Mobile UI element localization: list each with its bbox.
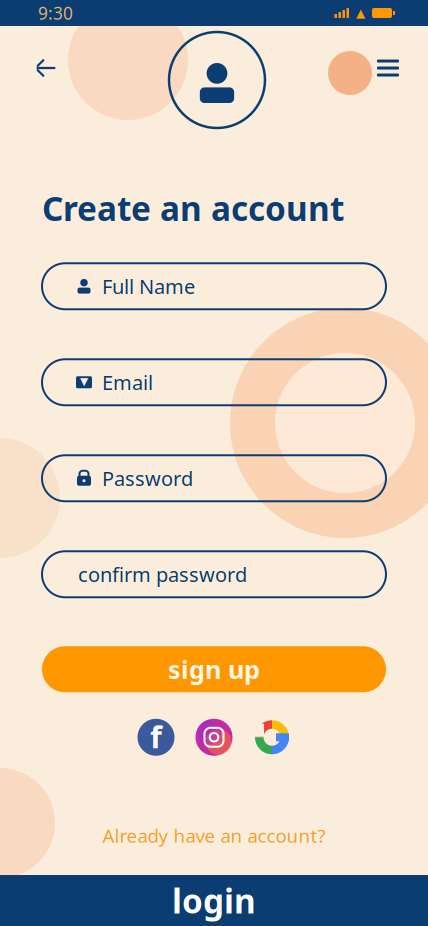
button[interactable]: Menu <box>366 46 410 90</box>
staticText: sign up <box>168 652 260 686</box>
button[interactable]: Sign up with Facebook <box>137 718 175 756</box>
button[interactable]: sign up <box>42 646 386 692</box>
staticText: Email <box>102 369 153 396</box>
staticText: ▼ <box>80 375 88 387</box>
staticText: Full Name <box>102 273 195 300</box>
staticText: ▲ <box>356 6 365 20</box>
button[interactable]: login <box>0 875 428 926</box>
staticText: Already have an account? <box>102 823 325 848</box>
button[interactable]: Password <box>42 455 386 501</box>
staticText: Password <box>102 465 193 492</box>
staticText: login <box>172 878 256 923</box>
button[interactable]: confirm password <box>42 551 386 597</box>
button[interactable]: Back <box>24 46 68 90</box>
staticText: Create an account <box>42 186 344 230</box>
staticText: f <box>150 716 162 757</box>
button[interactable]: Full Name <box>42 263 386 309</box>
button[interactable]: Already have an account? <box>0 815 428 856</box>
button[interactable]: ▼ <box>42 359 386 405</box>
staticText: 9:30 <box>38 1 73 24</box>
staticText: confirm password <box>78 561 247 588</box>
button[interactable]: Sign up with Google <box>253 718 291 756</box>
button[interactable]: Sign up with Instagram <box>195 718 233 756</box>
